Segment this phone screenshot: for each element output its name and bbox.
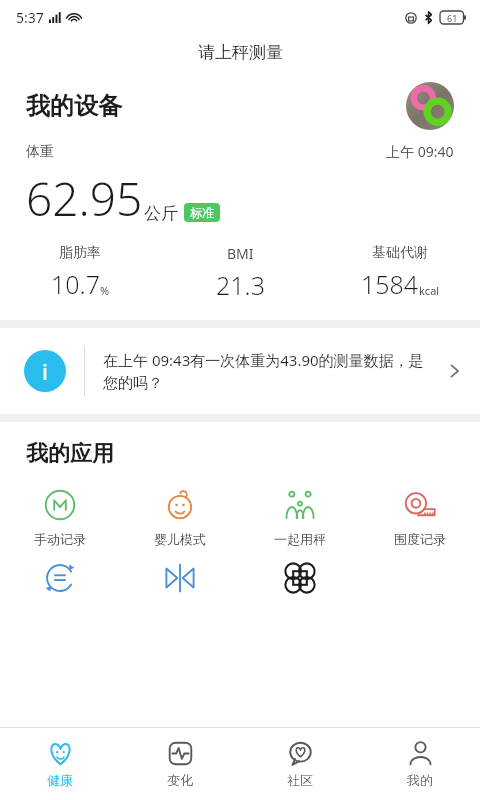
button[interactable]: BMI — [160, 244, 320, 302]
button[interactable]: 一起用秤 — [240, 488, 360, 547]
staticText: kcal — [419, 283, 440, 298]
staticText: 请上秤测量 — [198, 42, 283, 63]
staticText: BMI — [227, 244, 254, 263]
button[interactable]: i — [0, 328, 480, 414]
staticText: 上午 09:40 — [386, 142, 454, 161]
button[interactable]: 标准 — [184, 203, 220, 222]
button[interactable]: 基础代谢 — [320, 244, 480, 301]
staticText: 基础代谢 — [372, 244, 428, 262]
button[interactable]: 围度记录 — [360, 488, 480, 547]
staticText: 体重 — [26, 143, 54, 161]
button[interactable]: App — [240, 561, 360, 595]
button[interactable]: 脂肪率 — [0, 244, 160, 301]
staticText: 围度记录 — [394, 531, 446, 547]
staticText: 10.7 — [51, 267, 100, 301]
button[interactable]: 我的 — [360, 728, 480, 800]
staticText: 一起用秤 — [274, 531, 326, 547]
button[interactable]: App — [0, 561, 120, 595]
staticText: 5:37 — [16, 8, 44, 27]
staticText: 婴儿模式 — [154, 531, 206, 547]
staticText: % — [100, 283, 110, 298]
staticText: 社区 — [287, 772, 313, 788]
staticText: 我的设备 — [26, 91, 122, 121]
button[interactable]: 婴儿模式 — [120, 488, 240, 547]
staticText: 在上午 09:43有一次体重为43.90的测量数据，是您的吗？ — [103, 350, 438, 393]
staticText: i — [42, 356, 48, 386]
staticText: 健康 — [47, 772, 73, 788]
staticText: 1584 — [361, 267, 419, 301]
staticText: 62.95 — [26, 167, 143, 230]
staticText: 标准 — [190, 205, 214, 220]
staticText: 21.3 — [216, 268, 265, 302]
button[interactable]: 手动记录 — [0, 488, 120, 547]
staticText: 变化 — [167, 772, 193, 788]
staticText: 61 — [447, 12, 458, 24]
button[interactable]: 社区 — [240, 728, 360, 800]
button[interactable]: 健康 — [0, 728, 120, 800]
button[interactable]: 变化 — [120, 728, 240, 800]
staticText: 公斤 — [144, 203, 178, 224]
staticText: 脂肪率 — [59, 244, 101, 262]
staticText: 我的 — [407, 772, 433, 788]
button[interactable]: Device avatar — [406, 82, 454, 130]
button[interactable]: App — [120, 561, 240, 595]
staticText: 手动记录 — [34, 531, 86, 547]
staticText: 我的应用 — [26, 440, 114, 468]
